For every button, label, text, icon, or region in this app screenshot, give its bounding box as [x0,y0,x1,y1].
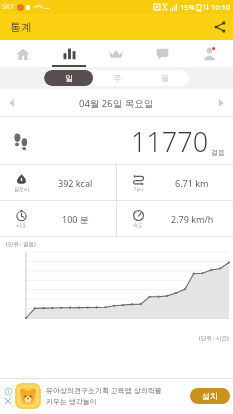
button[interactable]: 일 [44,70,93,86]
staticText: 월 [161,73,169,83]
button[interactable]: Ad info [4,387,12,395]
staticText: 392 kcal [58,177,93,189]
staticText: 거리 [133,186,143,192]
staticText: 6.71 km [175,177,209,189]
staticText: 유아상의견구소기획 고육앱 상의릭볼 [46,386,162,396]
staticText: 칼로리 [14,186,29,192]
button[interactable]: 거리 [117,165,233,200]
button[interactable]: Chat [139,40,186,67]
staticText: 걸음 [211,148,225,157]
button[interactable]: Previous day [0,91,24,115]
button[interactable]: 주 [93,70,141,86]
staticText: 키우는 생각놀이 [46,397,97,407]
staticText: 통계 [10,20,32,34]
button[interactable]: Share [207,14,233,40]
staticText: 15% [180,2,195,12]
button[interactable]: 설치 [190,388,230,404]
staticText: 11770 [131,123,209,160]
staticText: 시간 [16,222,26,228]
staticText: 속도 [133,222,143,228]
button[interactable]: Close ad [4,397,12,405]
button[interactable]: Statistics [46,40,92,67]
button[interactable]: Ranking [92,40,139,67]
staticText: 04월 26일 목요일 [79,97,154,110]
button[interactable]: Next day [209,91,233,115]
button[interactable]: Home [0,40,46,67]
staticText: 설치 [202,391,218,401]
button[interactable]: 속도 [117,201,233,236]
staticText: 일 [65,73,73,83]
staticText: 100 분 [62,213,89,225]
staticText: ... [44,2,50,12]
staticText: 주 [113,73,121,83]
button[interactable]: 칼로리 [0,165,116,200]
button[interactable]: 시간 [0,201,116,236]
staticText: (단위 : 걸음) [6,240,36,248]
staticText: SKT [2,2,15,12]
button[interactable]: Profile [186,40,233,67]
staticText: 10:10 [211,2,231,12]
button[interactable]: 월 [141,70,189,86]
staticText: 2.79 km/h [171,213,214,225]
staticText: (단위 : 시간) [199,334,229,342]
button[interactable]: App icon [15,383,41,409]
